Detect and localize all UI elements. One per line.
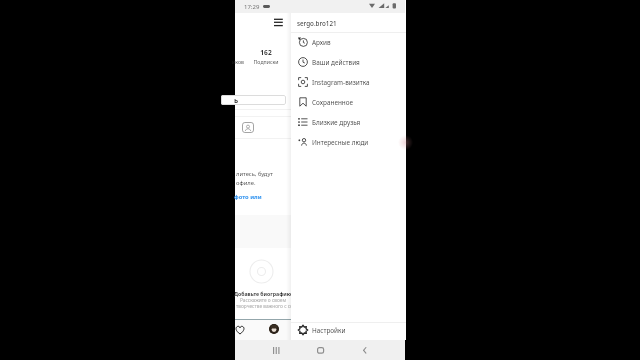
staticText: 17:29: [244, 3, 260, 11]
staticText: фото или: [234, 193, 262, 201]
staticText: Архив: [312, 38, 331, 47]
staticText: Интересные люди: [312, 138, 369, 147]
staticText: Instagram-визитка: [312, 78, 370, 87]
staticText: Сохраненное: [312, 98, 354, 107]
button[interactable]: Интересные люди: [291, 132, 406, 152]
staticText: 162: [256, 48, 276, 57]
staticText: иков: [232, 58, 244, 65]
staticText: офиле.: [236, 179, 256, 187]
staticText: sergo.bro121: [297, 19, 337, 28]
button[interactable]: Edit profile: [221, 95, 286, 105]
staticText: творчестве важного с соб: [236, 303, 296, 310]
button[interactable]: Home: [308, 340, 332, 360]
button[interactable]: Instagram-визитка: [291, 72, 406, 92]
staticText: Расскажите о своем: [240, 297, 287, 304]
staticText: Добавьте биографию: [234, 290, 292, 297]
button[interactable]: Архив: [291, 32, 406, 52]
button[interactable]: Open menu: [273, 16, 287, 30]
staticText: Близкие друзья: [312, 118, 361, 127]
staticText: Настройки: [312, 326, 346, 335]
button[interactable]: Сохраненное: [291, 92, 406, 112]
staticText: Ваши действия: [312, 58, 360, 67]
button[interactable]: Activity: [235, 325, 245, 335]
button[interactable]: Настройки: [291, 321, 406, 339]
button[interactable]: Profile card: [242, 122, 254, 133]
button[interactable]: Recent apps: [264, 340, 288, 360]
button[interactable]: Back: [352, 340, 376, 360]
button[interactable]: Близкие друзья: [291, 112, 406, 132]
staticText: ь: [234, 96, 239, 106]
button[interactable]: Ваши действия: [291, 52, 406, 72]
button[interactable]: Profile: [269, 324, 279, 334]
staticText: Подписки: [252, 58, 280, 65]
staticText: литесь, будут: [236, 170, 274, 178]
